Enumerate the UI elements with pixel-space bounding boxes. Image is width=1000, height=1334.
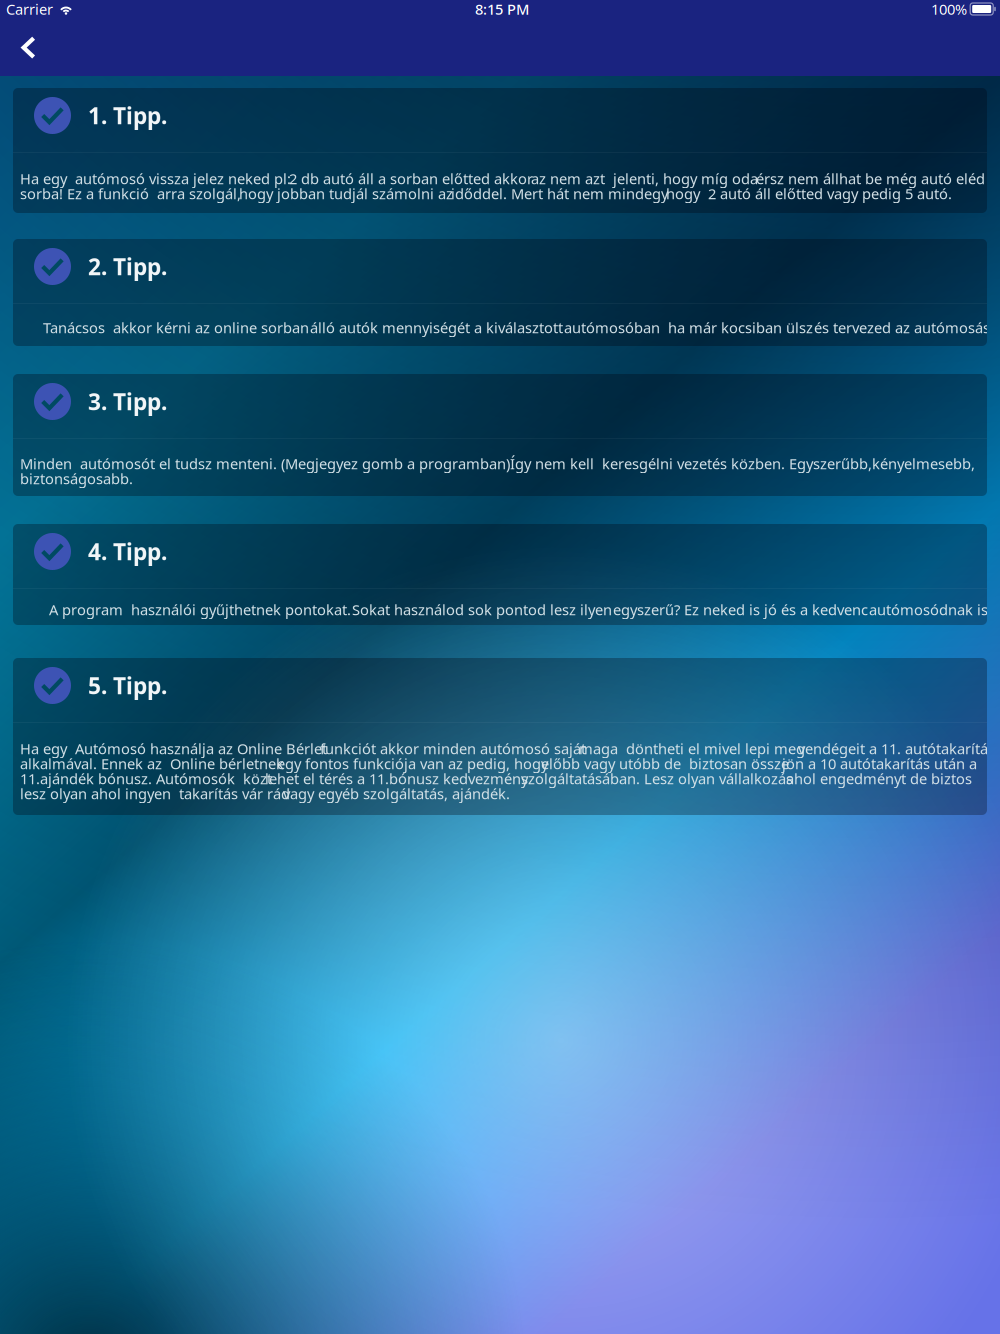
staticText: 3. Tipp.	[88, 386, 167, 416]
staticText: Sokat használod sok pontod lesz ilyen	[352, 600, 616, 619]
staticText: 100%	[931, 0, 967, 19]
staticText: 4. Tipp.	[88, 536, 167, 566]
staticText: egy fontos funkciója van az pedig, hogy	[277, 754, 552, 773]
button[interactable]: 2. Tipp.	[13, 239, 987, 346]
staticText: időddel. Mert hát nem mindegy	[451, 184, 672, 203]
staticText: az nem azt jelenti, hogy míg oda	[531, 169, 762, 188]
staticText: sorba! Ez a funkció arra szolgál,	[20, 184, 245, 203]
staticText: ahol engedményt de biztos	[786, 769, 972, 788]
staticText: funkciót akkor minden autómosó saját	[320, 739, 590, 758]
staticText: Carrier	[6, 0, 53, 19]
staticText: álló autók mennyiségét a kiválasztott	[310, 318, 567, 337]
button[interactable]: 3. Tipp.	[13, 374, 987, 496]
staticText: lesz olyan ahol ingyen takarítás vár rád	[20, 784, 294, 803]
staticText: érsz nem állhat be még autó eléd a	[756, 169, 997, 188]
staticText: A program használói gyűjthetnek pontokat…	[49, 600, 355, 619]
staticText: Tanácsos akkor kérni az online sorban	[43, 318, 313, 337]
staticText: Minden autómosót el tudsz menteni.	[20, 454, 281, 473]
staticText: 5. Tipp.	[88, 670, 167, 700]
button[interactable]: 4. Tipp.	[13, 524, 987, 625]
staticText: alkalmával. Ennek az Online bérletnek	[20, 754, 288, 773]
staticText: 2. Tipp.	[88, 251, 167, 281]
staticText: nem kell keresgélni vezetés közben.	[535, 454, 789, 473]
staticText: 11.ajándék bónusz. Autómosók közt	[20, 769, 276, 788]
button[interactable]: Back	[0, 24, 52, 76]
staticText: Ha egy Autómosó használja az Online Bérl…	[20, 739, 331, 758]
staticText: Egyszerűbb,kényelmesebb,	[789, 454, 975, 473]
button[interactable]: 5. Tipp.	[13, 658, 987, 815]
staticText: vendégeit a 11. autótakarítás	[798, 739, 995, 758]
button[interactable]: 1. Tipp.	[13, 88, 987, 213]
staticText: biztonságosabb.	[20, 469, 133, 488]
staticText: egyszerű? Ez neked is jó és a kedvenc	[613, 600, 872, 619]
staticText: előbb vagy utóbb de biztosan össze	[541, 754, 793, 773]
staticText: 2 db autó áll a sorban előtted akkor	[289, 169, 537, 188]
staticText: hogy 2 autó áll előtted vagy pedig 5 aut…	[666, 184, 952, 203]
staticText: vagy egyéb szolgáltatás, ajándék.	[283, 784, 510, 803]
staticText: (Megjegyez gomb a programban)Így	[281, 454, 535, 473]
staticText: jön a 10 autótakarítás után a	[782, 754, 977, 773]
staticText: maga döntheti el mivel lepi meg	[579, 739, 809, 758]
staticText: hogy jobban tudjál számolni az	[239, 184, 457, 203]
staticText: 8:15 PM	[475, 0, 529, 19]
staticText: autómosódnak is.	[869, 600, 992, 619]
staticText: 1. Tipp.	[88, 100, 167, 130]
staticText: Ha egy autómosó vissza jelez neked pl:	[20, 169, 295, 188]
staticText: autómosóban ha már kocsiban ülsz	[564, 318, 817, 337]
staticText: és tervezed az autómosást.	[814, 318, 999, 337]
staticText: szolgáltatásában. Lesz olyan vállalkozás	[521, 769, 797, 788]
staticText: lehet el térés a 11.bónusz kedvezmény	[265, 769, 532, 788]
